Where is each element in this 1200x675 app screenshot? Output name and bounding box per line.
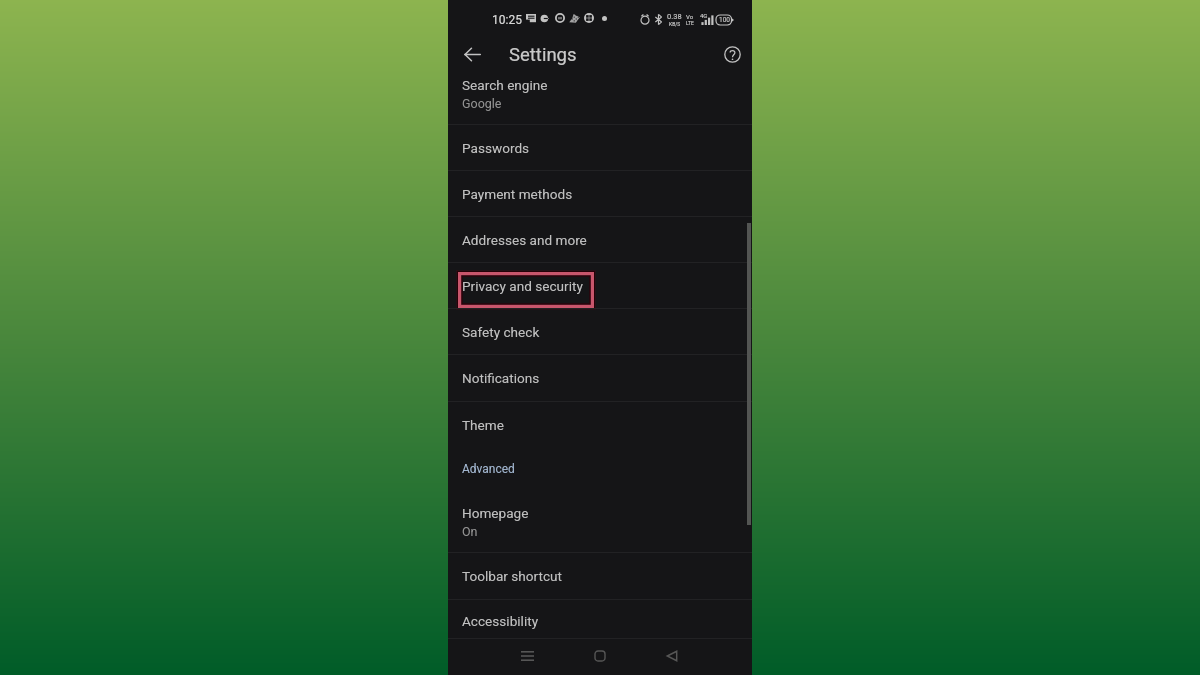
staticText: Addresses and more (462, 232, 587, 248)
staticText: Theme (462, 417, 504, 433)
button[interactable]: Passwords (448, 125, 752, 170)
staticText: Privacy and security (462, 278, 583, 294)
button[interactable]: Toolbar shortcut (448, 553, 752, 599)
staticText: Passwords (462, 140, 530, 156)
staticText: Settings (509, 44, 577, 66)
staticText: Safety check (462, 324, 540, 340)
staticText: 4G (700, 12, 708, 19)
staticText: Google (462, 96, 502, 111)
button[interactable]: Notifications (448, 355, 752, 401)
staticText: On (462, 524, 478, 539)
staticText: Advanced (462, 462, 515, 476)
button[interactable]: Recent apps (505, 639, 549, 675)
staticText: Search engine (462, 77, 548, 93)
button[interactable]: Addresses and more (448, 217, 752, 262)
button[interactable]: Back (650, 639, 694, 675)
staticText: 10:25 (492, 13, 522, 27)
staticText: Homepage (462, 505, 529, 521)
staticText: Accessibility (462, 613, 539, 629)
button[interactable]: Back (458, 42, 486, 66)
button[interactable]: Theme (448, 402, 752, 447)
button[interactable]: Home (578, 639, 622, 675)
staticText: 100 (719, 16, 730, 24)
button[interactable]: Payment methods (448, 171, 752, 216)
button[interactable]: Homepage (448, 490, 752, 552)
staticText: Notifications (462, 370, 540, 386)
staticText: Toolbar shortcut (462, 568, 562, 584)
staticText: KB/S (669, 21, 681, 27)
button[interactable]: Accessibility (448, 600, 752, 641)
button[interactable]: Search engine (448, 62, 752, 124)
staticText: Vo (686, 13, 694, 20)
button[interactable]: Privacy and security (448, 263, 752, 308)
staticText: LTE (686, 20, 694, 26)
button[interactable]: Help (718, 42, 746, 66)
staticText: 0.38 (667, 12, 682, 21)
staticText: Payment methods (462, 186, 573, 202)
button[interactable]: Safety check (448, 309, 752, 354)
